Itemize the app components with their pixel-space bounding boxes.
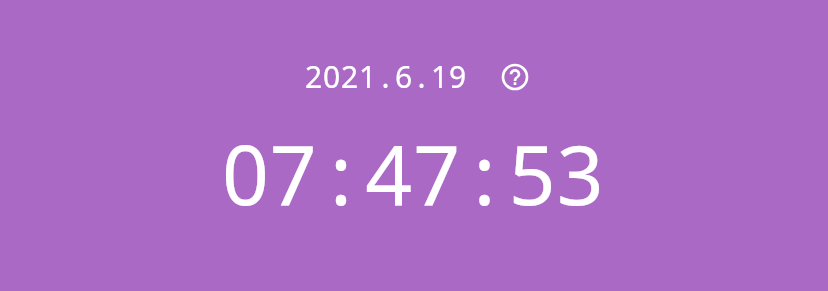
button[interactable]: Current time 07:47:53 <box>226 144 599 206</box>
button[interactable]: Date 2021.6.19 <box>306 64 465 89</box>
button[interactable]: Help <box>499 61 531 93</box>
